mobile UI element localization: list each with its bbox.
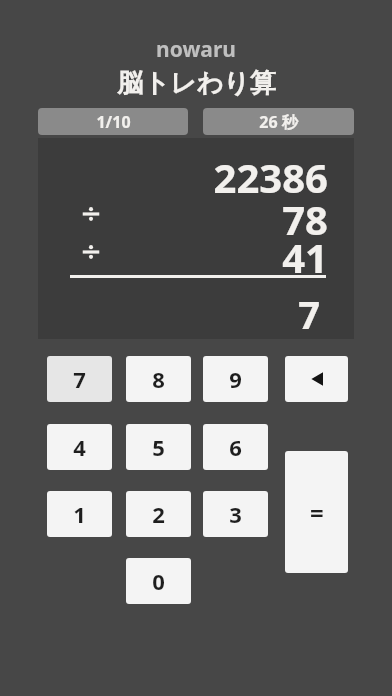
button[interactable]: = [285,451,348,573]
button[interactable]: 5 [126,424,191,470]
button[interactable]: 4 [47,424,112,470]
staticText: = [310,496,324,529]
button[interactable]: 1 [47,491,112,537]
staticText: 4 [73,432,86,462]
staticText: 6 [229,432,242,462]
button[interactable]: 9 [203,356,268,402]
staticText: 1 [73,499,86,529]
staticText: 脳トレわり算 [117,67,276,100]
staticText: 41 [282,230,328,280]
staticText: 7 [298,288,320,336]
staticText: 22386 [213,150,328,200]
button[interactable]: 3 [203,491,268,537]
staticText: 5 [152,432,165,462]
staticText: 1/10 [96,111,131,133]
staticText: 78 [282,192,328,242]
button[interactable]: 7 [47,356,112,402]
button[interactable]: 26 秒 [203,108,354,135]
button[interactable]: 8 [126,356,191,402]
staticText: 3 [229,499,242,529]
button[interactable]: 2 [126,491,191,537]
staticText: 7 [73,364,86,394]
staticText: 2 [152,499,165,529]
staticText: 26 秒 [259,111,298,133]
staticText: 9 [229,364,242,394]
staticText: nowaru [156,35,236,64]
staticText: 8 [152,364,165,394]
button[interactable]: Backspace [285,356,348,402]
button[interactable]: 1/10 [38,108,188,135]
button[interactable]: 0 [126,558,191,604]
button[interactable]: 6 [203,424,268,470]
staticText: 0 [152,566,165,596]
